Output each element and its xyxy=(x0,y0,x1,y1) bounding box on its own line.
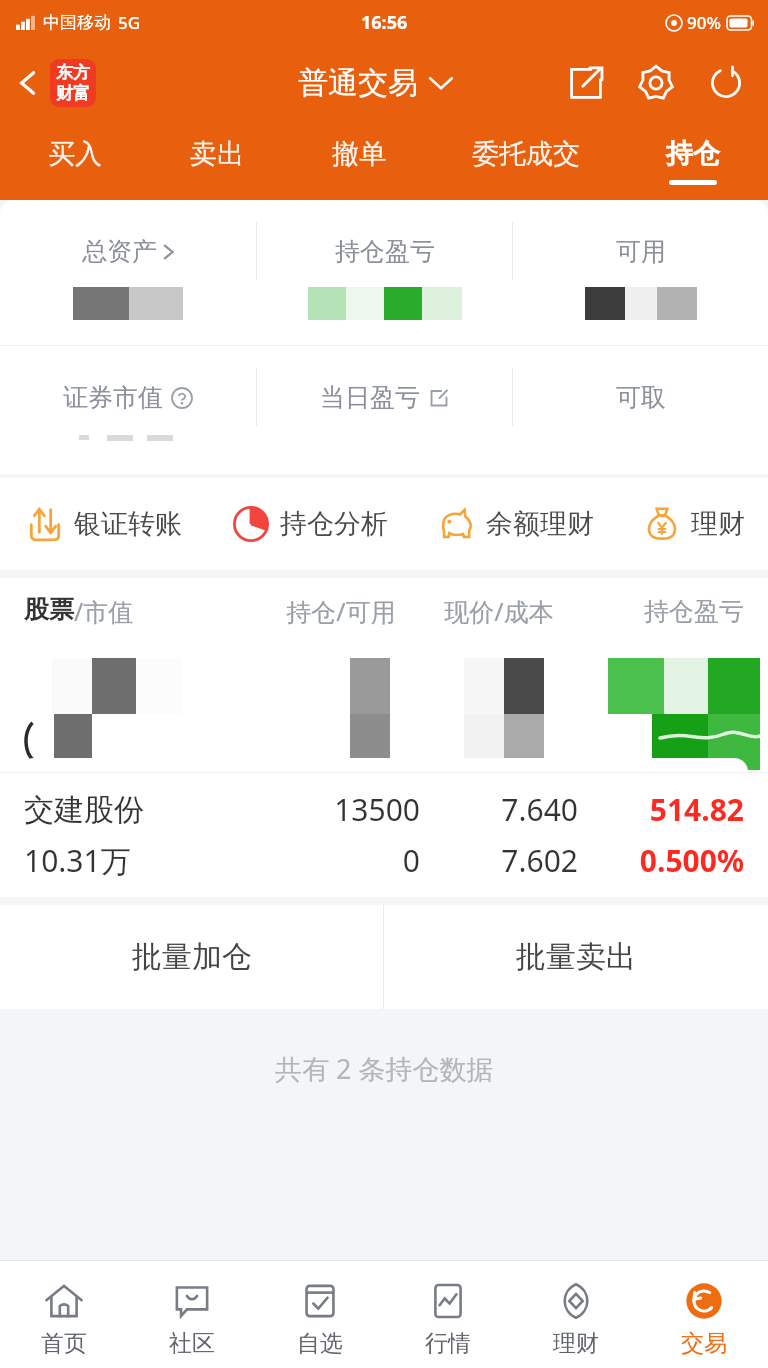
staticText: 银证转账 xyxy=(74,507,182,541)
staticText: 股票 xyxy=(24,594,74,625)
staticText: 13500 xyxy=(262,789,420,830)
button[interactable]: 交易 xyxy=(640,1272,768,1358)
button[interactable]: 可取 xyxy=(513,346,768,463)
button[interactable]: 当日盈亏 xyxy=(257,346,512,463)
button[interactable]: 持仓 xyxy=(622,122,764,200)
staticText: 交易 xyxy=(681,1329,727,1358)
staticText: 撤单 xyxy=(332,137,386,171)
button[interactable]: 持仓盈亏 xyxy=(257,200,512,320)
staticText: 交建股份 xyxy=(24,791,262,829)
button[interactable]: 银证转账 xyxy=(0,478,207,570)
button[interactable]: Back xyxy=(12,53,102,113)
staticText: /市值 xyxy=(74,594,134,628)
button[interactable]: 交建股份 xyxy=(0,773,768,897)
button[interactable]: 卖出 xyxy=(146,122,288,200)
staticText: 余额理财 xyxy=(486,507,594,541)
staticText: 10.31万 xyxy=(24,840,262,881)
staticText: 中国移动 xyxy=(43,12,111,33)
button[interactable]: 批量卖出 xyxy=(384,905,768,1009)
button[interactable]: Settings xyxy=(630,57,682,109)
staticText: 0 xyxy=(262,840,420,881)
staticText: 514.82 xyxy=(578,789,744,830)
button[interactable]: 社区 xyxy=(128,1272,256,1358)
button[interactable]: 批量加仓 xyxy=(0,905,383,1009)
staticText: 持仓/可用 xyxy=(262,594,420,628)
staticText: 东方 xyxy=(56,62,90,83)
staticText: 理财 xyxy=(553,1329,599,1358)
staticText: 总资产 xyxy=(82,236,157,267)
button[interactable]: 买入 xyxy=(4,122,146,200)
button[interactable]: 可用 xyxy=(513,200,768,320)
staticText: 批量卖出 xyxy=(516,938,636,976)
staticText: 当日盈亏 xyxy=(320,382,420,413)
staticText: 持仓盈亏 xyxy=(335,236,435,267)
staticText: 7.640 xyxy=(420,789,578,830)
staticText: 委托成交 xyxy=(472,137,580,171)
staticText: 7.602 xyxy=(420,840,578,881)
staticText: 卖出 xyxy=(190,137,244,171)
button[interactable] xyxy=(0,644,768,772)
staticText: 财富 xyxy=(56,83,90,104)
staticText: 行情 xyxy=(425,1329,471,1358)
staticText: 理财 xyxy=(691,507,745,541)
staticText: 自选 xyxy=(297,1329,343,1358)
button[interactable]: Share xyxy=(560,57,612,109)
button[interactable]: 理财 xyxy=(619,478,768,570)
button[interactable]: 委托成交 xyxy=(430,122,622,200)
staticText: 批量加仓 xyxy=(132,938,252,976)
button[interactable]: 撤单 xyxy=(288,122,430,200)
staticText: 可取 xyxy=(616,382,666,413)
staticText: 持仓盈亏 xyxy=(578,596,744,627)
staticText: 买入 xyxy=(48,137,102,171)
staticText: 现价/成本 xyxy=(420,594,578,628)
button[interactable]: 证券市值 xyxy=(0,346,256,463)
staticText: 共有 2 条持仓数据 xyxy=(275,1050,494,1087)
staticText: 0.500% xyxy=(578,840,744,881)
button[interactable]: 总资产 xyxy=(0,200,256,320)
button[interactable]: 理财 xyxy=(512,1272,640,1358)
button[interactable]: 普通交易 xyxy=(298,64,454,102)
staticText: 5G xyxy=(118,11,141,34)
staticText: 普通交易 xyxy=(298,64,418,102)
button[interactable]: 自选 xyxy=(256,1272,384,1358)
staticText: 证券市值 xyxy=(63,382,163,413)
staticText: 持仓分析 xyxy=(280,507,388,541)
button[interactable]: 持仓分析 xyxy=(207,478,413,570)
staticText: 可用 xyxy=(616,236,666,267)
button[interactable]: Refresh xyxy=(700,57,752,109)
staticText: 16:56 xyxy=(361,10,408,35)
staticText: 持仓 xyxy=(666,137,720,171)
button[interactable]: 余额理财 xyxy=(413,478,619,570)
staticText: 首页 xyxy=(41,1329,87,1358)
button[interactable]: 首页 xyxy=(0,1272,128,1358)
staticText: 90% xyxy=(687,11,721,34)
staticText: 社区 xyxy=(169,1329,215,1358)
button[interactable]: 行情 xyxy=(384,1272,512,1358)
